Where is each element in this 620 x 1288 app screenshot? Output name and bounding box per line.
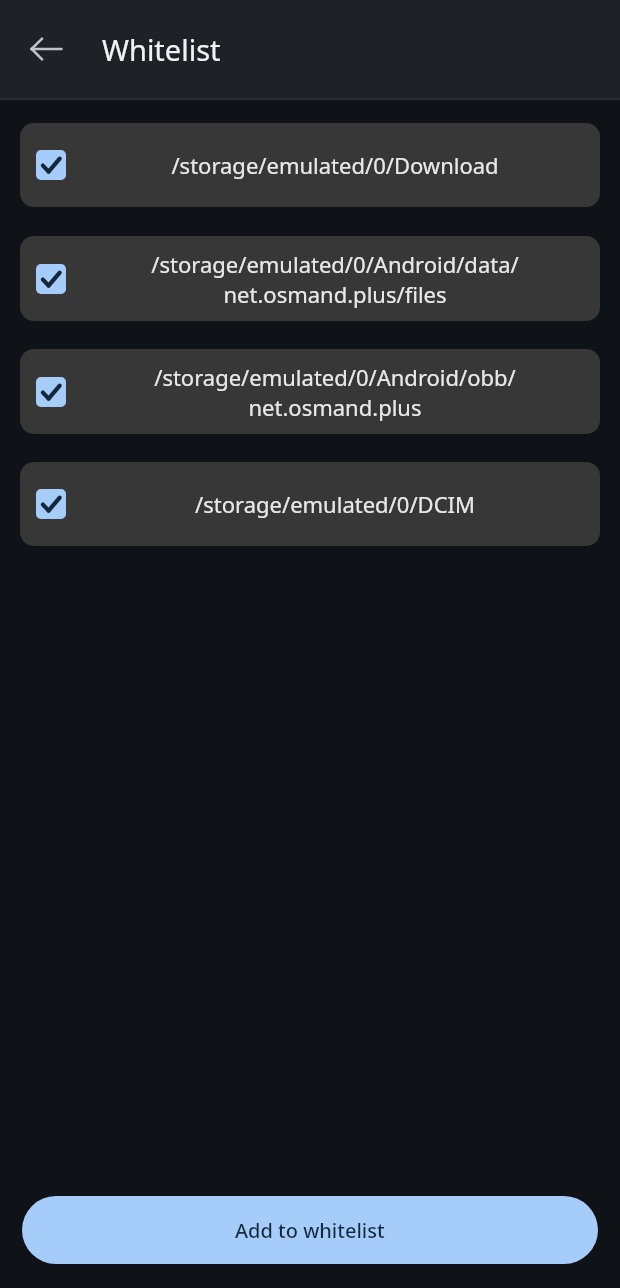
- staticText: /storage/emulated/0/DCIM: [195, 489, 475, 519]
- button[interactable]: Selected: [20, 349, 600, 434]
- staticText: Add to whitelist: [235, 1217, 385, 1244]
- staticText: Whitelist: [102, 30, 221, 69]
- button[interactable]: Selected: [36, 377, 66, 407]
- button[interactable]: Selected: [20, 236, 600, 321]
- button[interactable]: Add to whitelist: [22, 1196, 598, 1264]
- button[interactable]: Selected: [36, 264, 66, 294]
- button[interactable]: Back: [18, 21, 74, 77]
- button[interactable]: Selected: [36, 489, 66, 519]
- button[interactable]: Selected: [20, 123, 600, 207]
- staticText: /storage/emulated/0/Android/data/ net.os…: [151, 249, 519, 309]
- button[interactable]: Selected: [36, 150, 66, 180]
- button[interactable]: Selected: [20, 462, 600, 546]
- staticText: /storage/emulated/0/Android/obb/ net.osm…: [154, 362, 516, 422]
- staticText: /storage/emulated/0/Download: [171, 150, 499, 180]
